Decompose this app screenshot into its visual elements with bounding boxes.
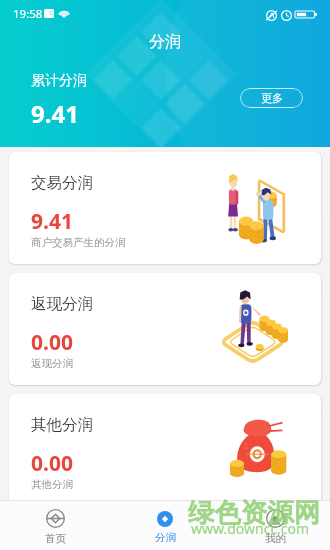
staticText: 19:58 <box>13 6 43 22</box>
button[interactable]: 交易分润 <box>9 152 321 264</box>
staticText: 9.41 <box>31 97 79 130</box>
button[interactable]: 分润 <box>110 501 220 550</box>
staticText: 9.41 <box>31 207 73 236</box>
staticText: 0.00 <box>31 328 73 357</box>
staticText: 分润 <box>149 32 181 52</box>
staticText: 其他分润 <box>31 415 93 435</box>
staticText: www.downcc.com <box>191 519 310 538</box>
staticText: 累计分润 <box>31 72 87 90</box>
button[interactable]: 返现分润 <box>9 273 321 385</box>
staticText: 我的 <box>265 532 286 545</box>
button[interactable]: 其他分润 <box>9 394 321 506</box>
staticText: 返现分润 <box>31 357 73 370</box>
staticText: 0.00 <box>31 449 73 478</box>
staticText: 更多 <box>261 91 283 105</box>
staticText: 返现分润 <box>31 294 93 314</box>
staticText: 交易分润 <box>31 173 93 193</box>
staticText: 商户交易产生的分润 <box>31 236 126 249</box>
button[interactable]: 首页 <box>0 501 110 550</box>
staticText: 其他分润 <box>31 478 73 491</box>
button[interactable]: 我的 <box>220 501 330 550</box>
button[interactable]: 更多 <box>240 88 303 108</box>
staticText: 首页 <box>45 532 66 545</box>
staticText: 分润 <box>155 531 176 544</box>
staticText: 绿色资源网 <box>188 496 321 529</box>
